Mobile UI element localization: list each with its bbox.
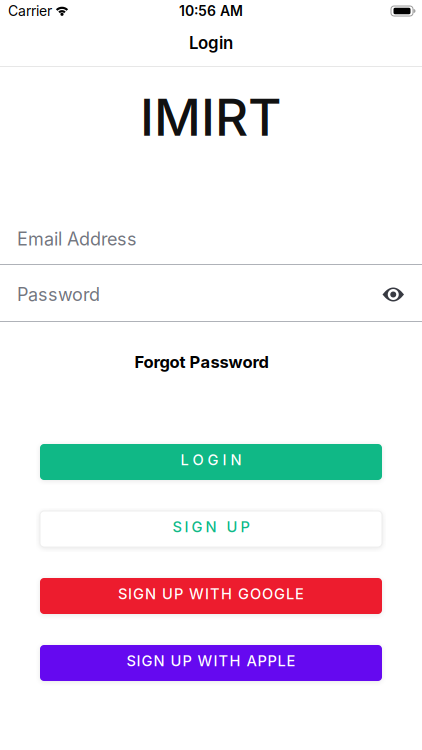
- button[interactable]: LOGIN: [40, 444, 382, 480]
- staticText: Password: [17, 281, 100, 307]
- staticText: Forgot Password: [134, 350, 268, 374]
- button[interactable]: SIGN UP WITH GOOGLE: [40, 578, 382, 614]
- staticText: Email Address: [17, 226, 137, 252]
- button[interactable]: SIGN UP: [40, 511, 382, 547]
- staticText: 10:56 AM: [179, 1, 243, 21]
- button[interactable]: Show password: [382, 286, 404, 302]
- staticText: L O G I N: [180, 449, 241, 470]
- button[interactable]: SIGN UP WITH APPLE: [40, 645, 382, 681]
- staticText: S I G N U P W I T H A P P L E: [126, 650, 295, 671]
- staticText: S I G N U P: [172, 516, 249, 537]
- staticText: S I G N U P W I T H G O O G L E: [118, 583, 304, 604]
- staticText: Carrier: [8, 1, 52, 21]
- staticText: Login: [189, 31, 233, 55]
- button[interactable]: Forgot Password: [144, 322, 278, 402]
- staticText: IMIRT: [140, 80, 282, 154]
